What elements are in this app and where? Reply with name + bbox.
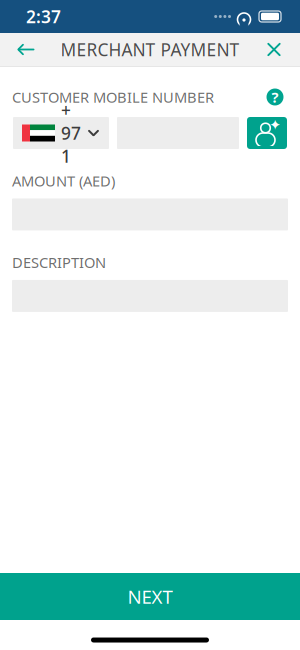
- staticText: ?: [271, 87, 278, 107]
- staticText: CUSTOMER MOBILE NUMBER: [12, 87, 214, 107]
- staticText: DESCRIPTION: [12, 252, 106, 272]
- button[interactable]: Back: [4, 33, 48, 66]
- staticText: ✦: [269, 117, 281, 133]
- button[interactable]: Close: [252, 33, 296, 66]
- staticText: AMOUNT (AED): [12, 171, 115, 190]
- staticText: NEXT: [127, 584, 172, 609]
- staticText: 2:37: [26, 5, 61, 28]
- button[interactable]: NEXT: [0, 573, 300, 620]
- button[interactable]: Choose from contacts: [247, 117, 287, 149]
- staticText: + 971: [61, 98, 81, 168]
- button[interactable]: + 971: [13, 117, 109, 149]
- button[interactable]: Help: [262, 86, 288, 108]
- staticText: MERCHANT PAYMENT: [60, 38, 239, 61]
